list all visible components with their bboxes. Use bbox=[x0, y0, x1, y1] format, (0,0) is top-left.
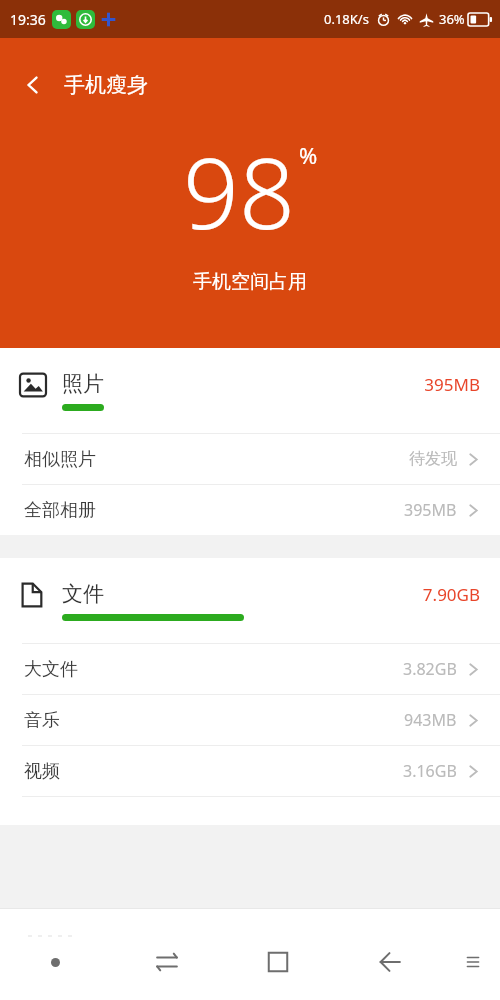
staticText: 相似照片 bbox=[24, 448, 96, 471]
button[interactable]: 视频 bbox=[0, 746, 500, 796]
staticText: 36% bbox=[439, 10, 465, 28]
staticText: 视频 bbox=[24, 760, 60, 783]
staticText: 音乐 bbox=[24, 709, 60, 732]
button[interactable]: 音乐 bbox=[0, 695, 500, 745]
staticText: 0.18K/s bbox=[324, 10, 369, 28]
staticText: 943MB bbox=[404, 709, 457, 731]
button[interactable]: 全部相册 bbox=[0, 485, 500, 535]
staticText: 19:36 bbox=[10, 10, 46, 29]
staticText: 全部相册 bbox=[24, 499, 96, 522]
staticText: 大文件 bbox=[24, 658, 78, 681]
staticText: 3.82GB bbox=[403, 658, 457, 680]
staticText: 3.16GB bbox=[403, 760, 457, 782]
button[interactable]: 相似照片 bbox=[0, 434, 500, 484]
button[interactable]: 大文件 bbox=[0, 644, 500, 694]
button[interactable]: Switch bbox=[111, 940, 222, 984]
staticText: 手机瘦身 bbox=[64, 72, 148, 98]
staticText: 98 bbox=[183, 124, 295, 257]
staticText: 照片 bbox=[62, 371, 104, 397]
other: Back bbox=[22, 74, 44, 96]
button[interactable]: Back bbox=[334, 940, 446, 984]
button[interactable]: 照片 bbox=[0, 348, 500, 433]
button[interactable]: Recents bbox=[222, 940, 334, 984]
staticText: 7.90GB bbox=[0, 583, 480, 606]
staticText: 手机空间占用 bbox=[193, 270, 307, 294]
button[interactable]: 文件 bbox=[0, 558, 500, 643]
staticText: 395MB bbox=[0, 373, 480, 396]
button[interactable]: Back bbox=[0, 60, 168, 110]
staticText: 待发现 bbox=[409, 449, 457, 469]
staticText: % bbox=[299, 140, 318, 170]
staticText: 395MB bbox=[404, 499, 457, 521]
staticText: 文件 bbox=[62, 581, 104, 607]
button[interactable]: Menu bbox=[446, 940, 500, 984]
button[interactable]: Indicator bbox=[0, 940, 111, 984]
